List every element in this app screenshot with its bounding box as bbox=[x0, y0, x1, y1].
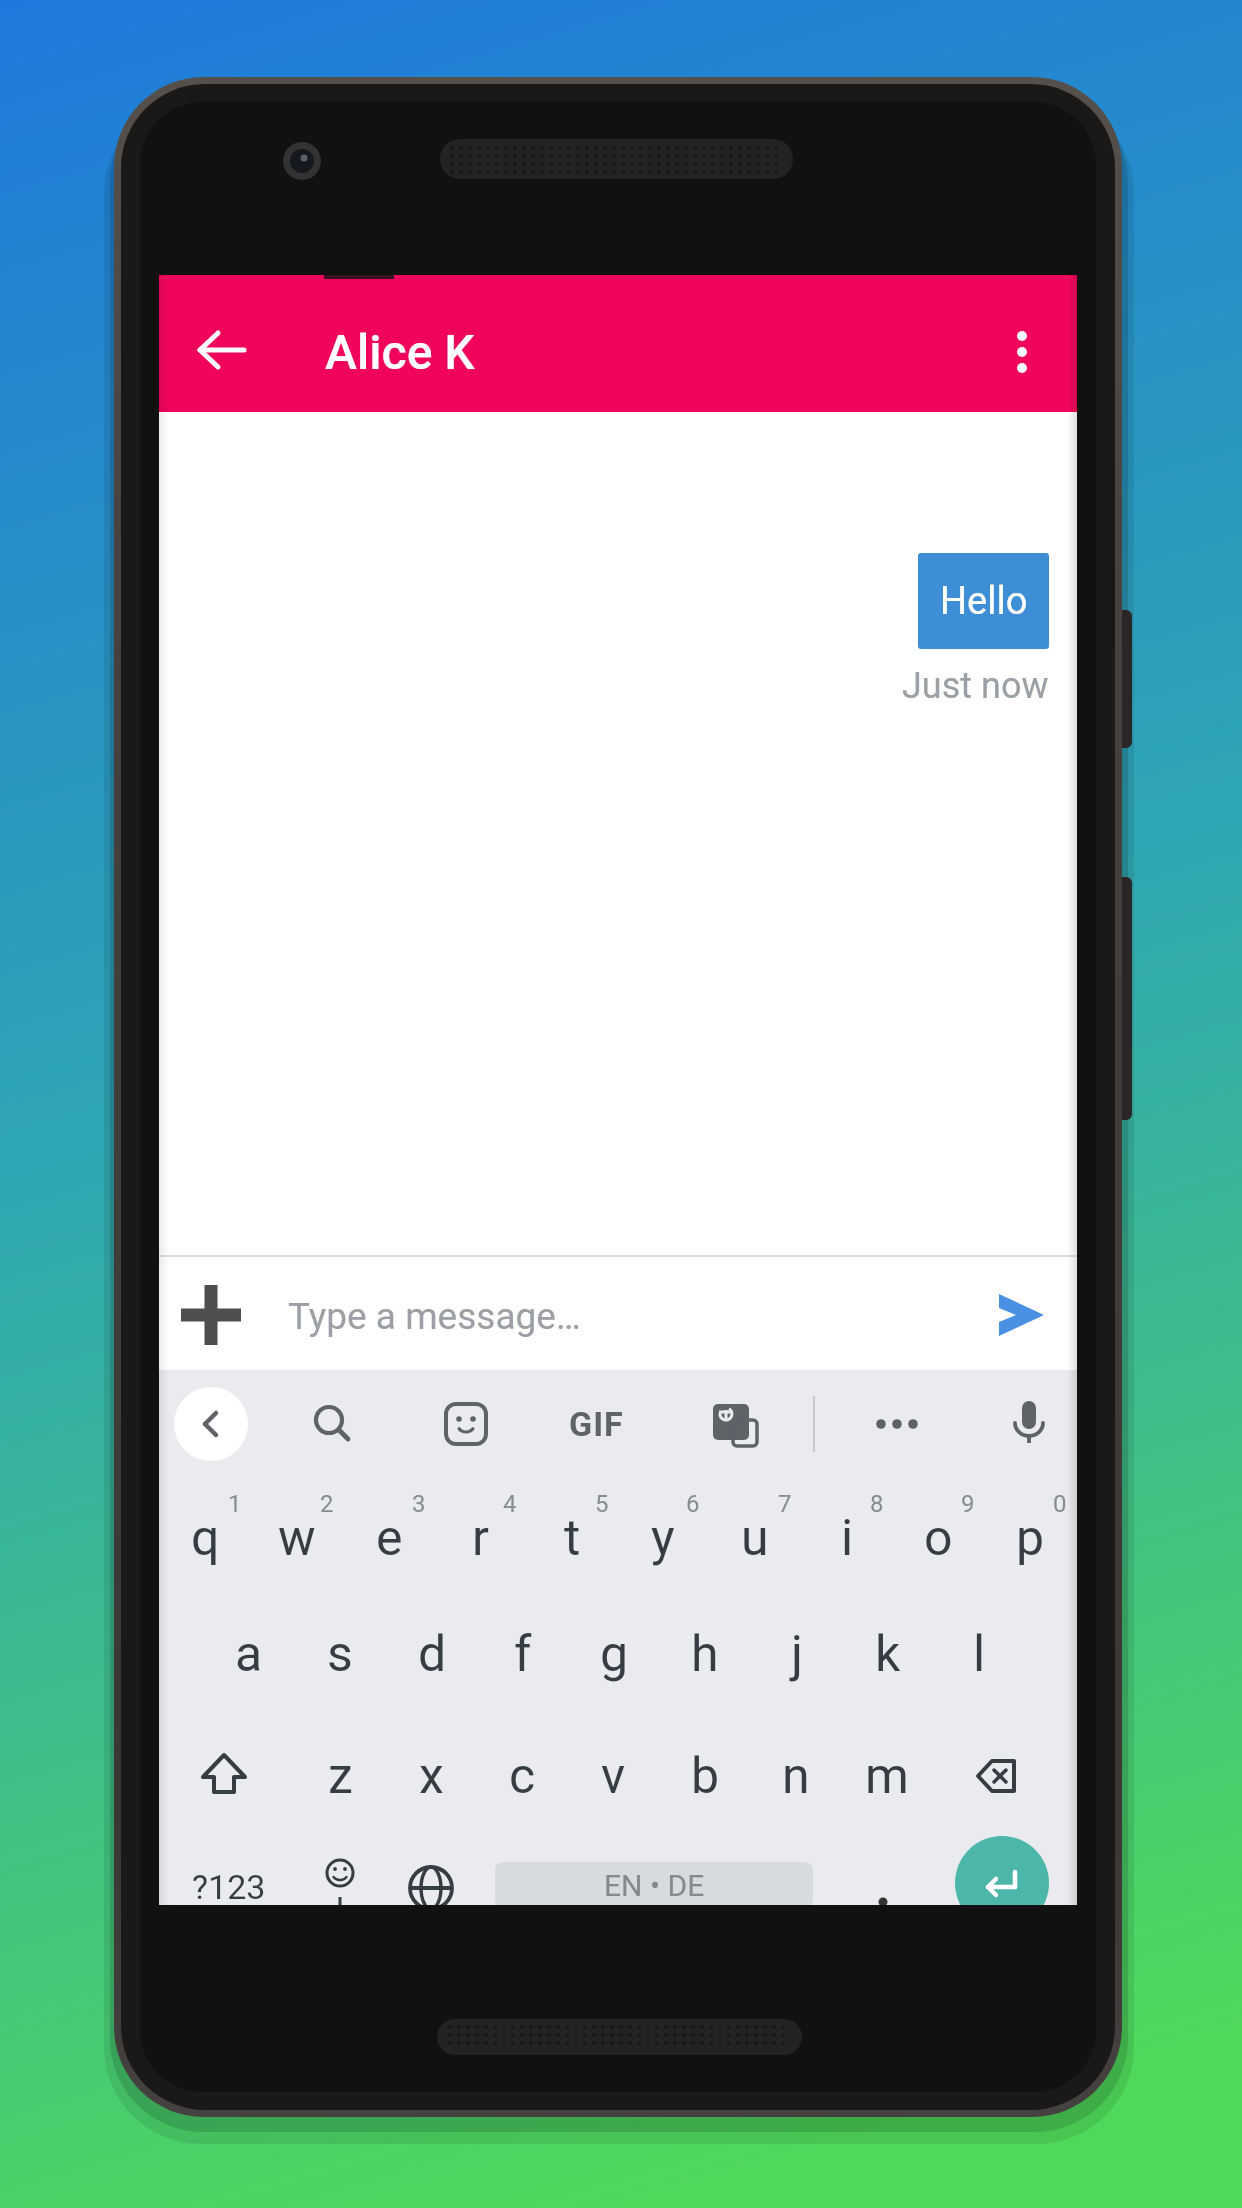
button[interactable]: u bbox=[711, 1486, 799, 1590]
staticText: c bbox=[509, 1747, 536, 1806]
button[interactable]: l bbox=[935, 1602, 1023, 1706]
button[interactable]: o bbox=[894, 1486, 982, 1590]
button[interactable] bbox=[159, 1255, 1077, 1370]
button[interactable]: h bbox=[661, 1602, 749, 1706]
button[interactable]: x bbox=[387, 1724, 475, 1828]
staticText: d bbox=[418, 1625, 447, 1684]
staticText: x bbox=[419, 1747, 444, 1806]
staticText: Type a message… bbox=[288, 1295, 581, 1338]
staticText: Alice K bbox=[325, 324, 475, 380]
staticText: m bbox=[865, 1747, 909, 1806]
staticText: 9 bbox=[961, 1490, 975, 1518]
staticText: b bbox=[691, 1747, 720, 1806]
button[interactable]: q bbox=[161, 1486, 249, 1590]
staticText: 1 bbox=[228, 1490, 242, 1518]
staticText: Hello bbox=[940, 579, 1028, 624]
staticText: GIF bbox=[569, 1404, 624, 1444]
staticText: t bbox=[564, 1509, 581, 1568]
staticText: v bbox=[601, 1747, 626, 1806]
staticText: n bbox=[782, 1747, 810, 1806]
button[interactable]: a bbox=[205, 1602, 293, 1706]
staticText: 5 bbox=[595, 1490, 609, 1518]
staticText: q bbox=[191, 1509, 220, 1568]
button[interactable] bbox=[175, 1279, 247, 1351]
button[interactable]: b bbox=[661, 1724, 749, 1828]
staticText: j bbox=[791, 1625, 803, 1684]
button[interactable]: d bbox=[388, 1602, 476, 1706]
button[interactable] bbox=[700, 1389, 770, 1459]
staticText: 4 bbox=[503, 1490, 517, 1518]
staticText: r bbox=[472, 1509, 489, 1568]
staticText: 3 bbox=[412, 1490, 426, 1518]
staticText: o bbox=[924, 1509, 953, 1568]
button[interactable]: GIF bbox=[536, 1384, 656, 1464]
button[interactable] bbox=[310, 1839, 370, 1905]
staticText: 2 bbox=[320, 1490, 334, 1518]
staticText: y bbox=[651, 1509, 675, 1568]
button[interactable]: g bbox=[570, 1602, 658, 1706]
staticText: s bbox=[327, 1625, 353, 1684]
button[interactable]: z bbox=[296, 1724, 384, 1828]
staticText: 7 bbox=[778, 1490, 792, 1518]
button[interactable] bbox=[393, 1850, 469, 1905]
staticText: ?123 bbox=[192, 1867, 266, 1905]
button[interactable] bbox=[184, 1731, 264, 1821]
staticText: z bbox=[328, 1747, 353, 1806]
button[interactable]: v bbox=[569, 1724, 657, 1828]
button[interactable]: c bbox=[478, 1724, 566, 1828]
button[interactable]: p bbox=[986, 1486, 1074, 1590]
staticText: 0 bbox=[1053, 1490, 1067, 1518]
button[interactable]: m bbox=[843, 1724, 931, 1828]
button[interactable]: EN • DE bbox=[495, 1862, 813, 1905]
staticText: p bbox=[1016, 1509, 1045, 1568]
button[interactable] bbox=[857, 1389, 937, 1459]
button[interactable] bbox=[955, 1836, 1049, 1905]
button[interactable] bbox=[953, 1731, 1043, 1821]
button[interactable] bbox=[190, 318, 254, 382]
button[interactable]: r bbox=[436, 1486, 524, 1590]
staticText: i bbox=[841, 1509, 854, 1568]
staticText: a bbox=[235, 1625, 263, 1684]
staticText: l bbox=[973, 1625, 986, 1684]
staticText: 6 bbox=[686, 1490, 700, 1518]
button[interactable]: y bbox=[619, 1486, 707, 1590]
staticText: k bbox=[875, 1625, 901, 1684]
button[interactable]: ?123 bbox=[169, 1847, 289, 1905]
button[interactable]: e bbox=[345, 1486, 433, 1590]
staticText: e bbox=[376, 1509, 403, 1568]
staticText: w bbox=[278, 1509, 316, 1568]
button[interactable]: i bbox=[803, 1486, 891, 1590]
button[interactable]: Hello bbox=[918, 553, 1049, 649]
button[interactable] bbox=[431, 1389, 501, 1459]
staticText: u bbox=[741, 1509, 769, 1568]
button[interactable]: j bbox=[753, 1602, 841, 1706]
staticText: g bbox=[600, 1625, 629, 1684]
staticText: f bbox=[514, 1625, 532, 1684]
button[interactable] bbox=[994, 307, 1050, 397]
button[interactable]: s bbox=[296, 1602, 384, 1706]
staticText: EN • DE bbox=[604, 1868, 705, 1903]
button[interactable] bbox=[868, 1891, 898, 1905]
button[interactable]: w bbox=[253, 1486, 341, 1590]
button[interactable]: t bbox=[528, 1486, 616, 1590]
button[interactable] bbox=[989, 1283, 1053, 1347]
button[interactable] bbox=[298, 1389, 368, 1459]
button[interactable]: n bbox=[752, 1724, 840, 1828]
button[interactable] bbox=[171, 1384, 251, 1464]
button[interactable] bbox=[994, 1389, 1064, 1459]
button[interactable]: k bbox=[844, 1602, 932, 1706]
staticText: h bbox=[691, 1625, 719, 1684]
button[interactable]: f bbox=[479, 1602, 567, 1706]
staticText: 8 bbox=[870, 1490, 884, 1518]
staticText: Just now bbox=[902, 665, 1049, 707]
